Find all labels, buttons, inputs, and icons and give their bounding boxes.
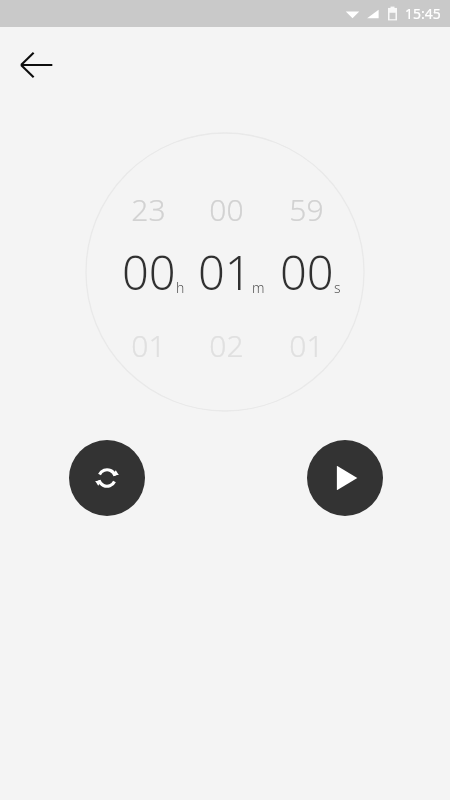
staticText: 00 [209,189,244,230]
button[interactable]: Back [8,37,64,93]
button[interactable]: 00 [271,238,350,306]
staticText: 00 [122,240,176,304]
button[interactable]: 01 [267,323,345,367]
button[interactable]: 59 [267,187,345,231]
staticText: 01 [198,240,252,304]
button[interactable]: 01 [192,238,271,306]
button[interactable]: 00 [114,238,193,306]
button[interactable]: 02 [187,323,265,367]
button[interactable]: Reset [69,440,145,516]
button[interactable]: 23 [109,187,187,231]
staticText: m [252,278,265,297]
staticText: 01 [131,325,166,366]
staticText: 01 [289,325,324,366]
staticText: 00 [280,240,334,304]
button[interactable]: 01 [109,323,187,367]
staticText: s [334,278,341,297]
staticText: 02 [209,325,244,366]
staticText: 59 [289,189,324,230]
button[interactable]: 00 [187,187,265,231]
staticText: h [176,278,185,297]
staticText: 15:45 [405,4,441,23]
button[interactable]: Start [307,440,383,516]
staticText: 23 [131,189,166,230]
